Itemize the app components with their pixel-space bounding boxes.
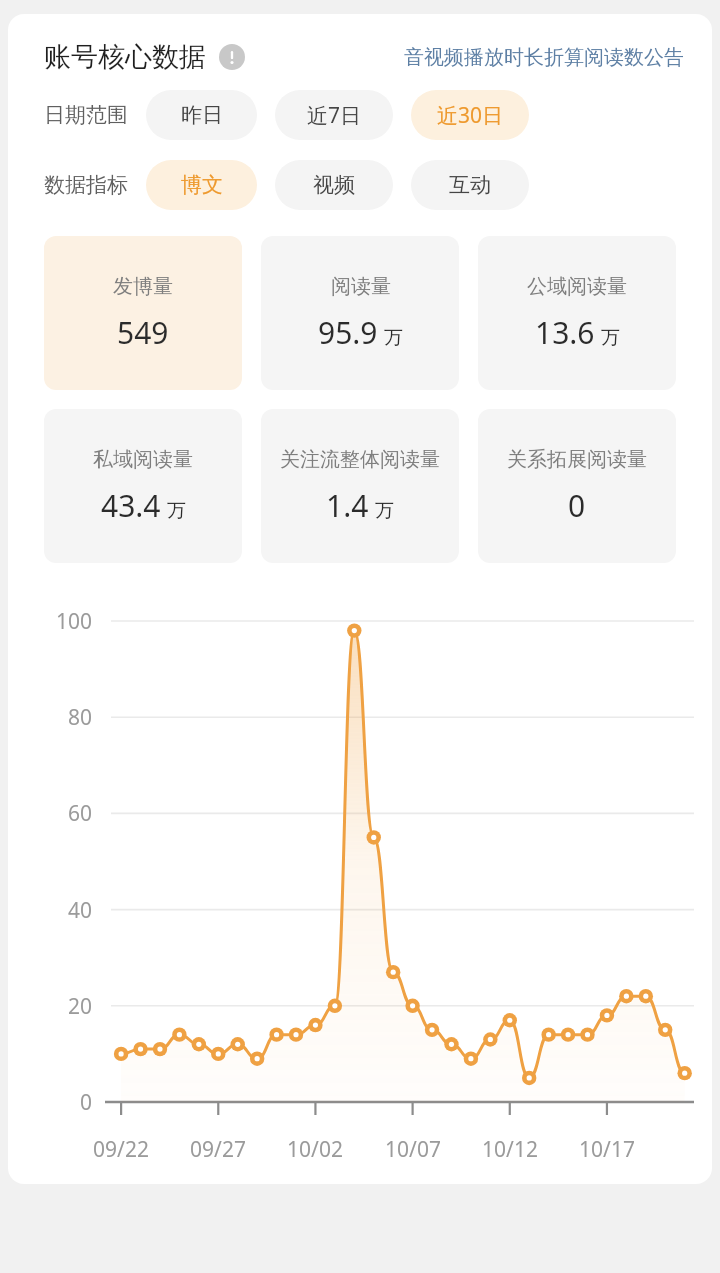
staticText: 私域阅读量	[93, 447, 193, 472]
staticText: 阅读量	[331, 274, 391, 299]
staticText: 万	[601, 326, 620, 350]
staticText: 80	[30, 703, 92, 732]
staticText: 博文	[181, 172, 223, 198]
staticText: 公域阅读量	[527, 274, 627, 299]
staticText: 13.6	[535, 312, 595, 353]
staticText: 0	[30, 1088, 92, 1117]
button[interactable]: 音视频播放时长折算阅读数公告	[404, 45, 684, 70]
staticText: 数据指标	[44, 172, 128, 198]
staticText: 关注流整体阅读量	[280, 447, 440, 472]
staticText: 09/22	[76, 1135, 166, 1164]
button[interactable]: 昨日	[146, 90, 257, 140]
button[interactable]: 关系拓展阅读量	[478, 409, 676, 563]
staticText: 43.4	[101, 485, 161, 526]
button[interactable]: 互动	[411, 160, 529, 210]
staticText: 09/27	[173, 1135, 263, 1164]
button[interactable]: 近7日	[275, 90, 393, 140]
button[interactable]: 公域阅读量	[478, 236, 676, 390]
staticText: 40	[30, 896, 92, 925]
staticText: 互动	[449, 172, 491, 198]
staticText: 关系拓展阅读量	[507, 447, 647, 472]
button[interactable]: 阅读量	[261, 236, 459, 390]
button[interactable]: 近30日	[411, 90, 529, 140]
button[interactable]: 关注流整体阅读量	[261, 409, 459, 563]
staticText: 10/17	[562, 1135, 652, 1164]
button[interactable]: 博文	[146, 160, 257, 210]
staticText: 10/02	[270, 1135, 360, 1164]
staticText: 95.9	[318, 312, 378, 353]
staticText: 视频	[313, 172, 355, 198]
staticText: 近30日	[437, 101, 504, 130]
staticText: 发博量	[113, 274, 173, 299]
staticText: 100	[30, 607, 92, 636]
staticText: 20	[30, 992, 92, 1021]
staticText: 万	[167, 499, 186, 523]
staticText: 10/07	[368, 1135, 458, 1164]
staticText: 万	[375, 499, 394, 523]
staticText: 近7日	[307, 101, 362, 130]
staticText: 549	[117, 312, 169, 353]
staticText: 10/12	[465, 1135, 555, 1164]
staticText: 音视频播放时长折算阅读数公告	[404, 45, 684, 70]
button[interactable]: 发博量	[44, 236, 242, 390]
staticText: 万	[384, 326, 403, 350]
button[interactable]: 视频	[275, 160, 393, 210]
staticText: 1.4	[326, 485, 369, 526]
button[interactable]: 信息说明	[219, 44, 245, 70]
staticText: 60	[30, 799, 92, 828]
staticText: 账号核心数据	[44, 40, 206, 74]
staticText: 日期范围	[44, 102, 128, 128]
staticText: 昨日	[181, 102, 223, 128]
staticText: 0	[568, 485, 586, 526]
button[interactable]: 私域阅读量	[44, 409, 242, 563]
